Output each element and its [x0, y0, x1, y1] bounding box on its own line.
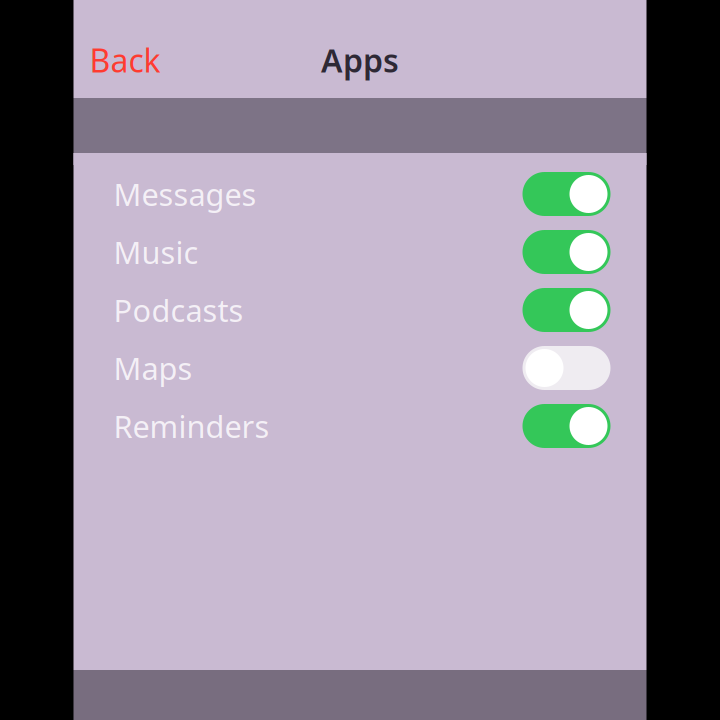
- staticText: Back: [89, 39, 160, 81]
- staticText: Music: [113, 232, 198, 272]
- button[interactable]: Music: [73, 223, 646, 281]
- staticText: Reminders: [113, 406, 269, 446]
- staticText: Maps: [113, 348, 192, 388]
- button[interactable]: Back: [73, 30, 176, 90]
- staticText: Apps: [321, 39, 399, 81]
- button[interactable]: Maps: [73, 339, 646, 397]
- button[interactable]: Reminders: [73, 397, 646, 455]
- staticText: Podcasts: [113, 290, 243, 330]
- staticText: Messages: [113, 174, 256, 214]
- button[interactable]: Podcasts: [73, 281, 646, 339]
- button[interactable]: Messages: [73, 165, 646, 223]
